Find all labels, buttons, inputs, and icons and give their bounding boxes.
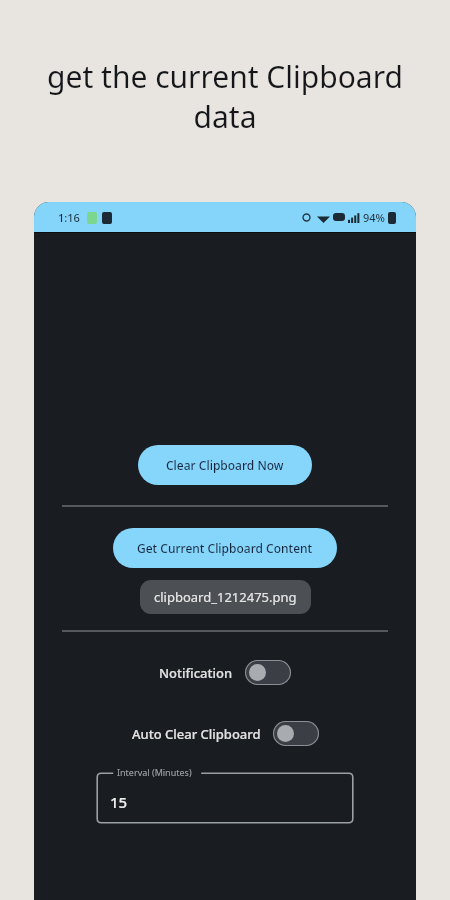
staticText: get the current Clipboard data bbox=[24, 56, 426, 137]
button[interactable]: clipboard_1212475.png bbox=[140, 580, 311, 614]
staticText: Notification bbox=[159, 664, 233, 682]
staticText: clipboard_1212475.png bbox=[154, 588, 297, 606]
staticText: Get Current Clipboard Content bbox=[137, 540, 313, 556]
staticText: Auto Clear Clipboard bbox=[132, 725, 261, 743]
button[interactable]: Notification bbox=[151, 656, 299, 689]
button[interactable]: Clear Clipboard Now bbox=[138, 445, 312, 485]
staticText: 15 bbox=[110, 792, 128, 812]
staticText: 1:16 bbox=[58, 210, 80, 225]
button[interactable]: Get Current Clipboard Content bbox=[113, 528, 337, 568]
button[interactable]: Auto Clear Clipboard bbox=[124, 717, 327, 750]
staticText: 94% bbox=[363, 210, 385, 225]
staticText: Interval (Minutes) bbox=[117, 766, 192, 778]
staticText: Clear Clipboard Now bbox=[166, 457, 284, 473]
